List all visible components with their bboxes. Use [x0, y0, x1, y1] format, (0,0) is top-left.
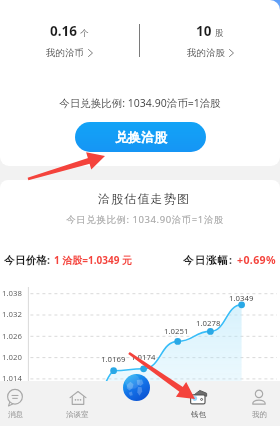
staticText: 1.020	[0, 352, 24, 363]
staticText: 1.038	[0, 288, 24, 299]
button[interactable]: Globe	[123, 374, 150, 401]
staticText: 1.026	[0, 331, 24, 342]
button[interactable]: 我的	[235, 381, 280, 426]
staticText: 个	[80, 28, 89, 39]
staticText: 兑换洽股	[115, 129, 167, 145]
staticText: 股	[215, 28, 224, 39]
button[interactable]: 钱包	[174, 381, 222, 426]
staticText: 1.0251	[164, 326, 189, 337]
staticText: 今日兑换比例: 1034.90洽币=1洽股	[5, 213, 280, 226]
button[interactable]: 消息	[0, 381, 39, 426]
staticText: 10	[196, 22, 212, 40]
staticText: +0.69%	[237, 253, 276, 267]
staticText: 洽谈室	[66, 410, 89, 419]
staticText: 1.032	[0, 309, 24, 320]
staticText: 消息	[8, 410, 23, 419]
staticText: 1.0349	[229, 293, 254, 304]
staticText: 今日涨幅:	[183, 253, 237, 267]
staticText: 我的洽币	[46, 47, 84, 59]
button[interactable]: 0.16	[0, 22, 139, 59]
staticText: 1.0278	[196, 318, 221, 329]
staticText: 今日兑换比例: 1034.90洽币=1洽股	[0, 96, 280, 110]
staticText: 今日价格:	[4, 253, 54, 267]
staticText: 1.0174	[131, 352, 156, 363]
button[interactable]: 10	[140, 22, 280, 59]
staticText: 钱包	[191, 410, 206, 419]
staticText: 1.014	[0, 373, 24, 381]
staticText: 1 洽股=1.0349 元	[54, 253, 133, 267]
staticText: 我的	[252, 410, 267, 419]
button[interactable]: 兑换洽股	[75, 122, 206, 152]
staticText: 1.0169	[101, 354, 126, 365]
staticText: 洽股估值走势图	[4, 191, 280, 206]
staticText: 我的洽股	[187, 47, 225, 59]
staticText: 0.16	[50, 22, 77, 40]
button[interactable]: 洽谈室	[53, 381, 101, 426]
